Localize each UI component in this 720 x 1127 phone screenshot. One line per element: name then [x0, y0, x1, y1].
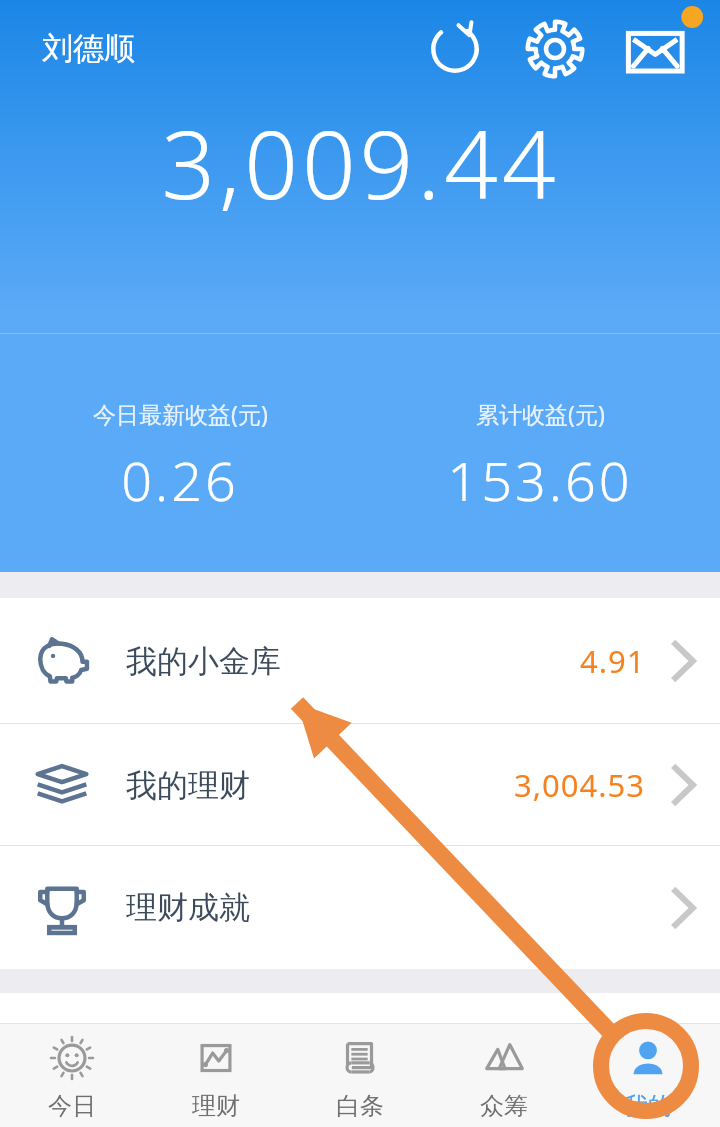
- button[interactable]: 我的理财: [0, 724, 720, 846]
- staticText: 4.91: [580, 640, 646, 682]
- button[interactable]: 理财: [144, 1024, 288, 1127]
- button[interactable]: Messages: [620, 4, 704, 88]
- staticText: 153.60: [447, 443, 633, 517]
- button[interactable]: 白条: [288, 1024, 432, 1127]
- staticText: 今日: [48, 1091, 96, 1121]
- staticText: 今日最新收益(元): [93, 398, 268, 429]
- staticText: 我的小金库: [126, 642, 281, 681]
- staticText: 白条: [336, 1091, 384, 1121]
- button[interactable]: 理财成就: [0, 846, 720, 969]
- button[interactable]: Refresh: [424, 18, 486, 80]
- button[interactable]: 累计收益(元): [360, 340, 720, 517]
- staticText: 0.26: [121, 443, 239, 517]
- button[interactable]: Settings: [524, 18, 586, 80]
- button[interactable]: 我的: [576, 1024, 720, 1127]
- button[interactable]: 我的小金库: [0, 598, 720, 724]
- staticText: 我的: [624, 1091, 672, 1121]
- staticText: 理财: [192, 1091, 240, 1121]
- staticText: 理财成就: [126, 888, 250, 927]
- staticText: 众筹: [480, 1091, 528, 1121]
- staticText: 3,004.53: [514, 764, 646, 806]
- staticText: 累计收益(元): [476, 398, 605, 429]
- staticText: 3,009.44: [161, 99, 560, 227]
- button[interactable]: 今日: [0, 1024, 144, 1127]
- button[interactable]: 今日最新收益(元): [0, 340, 360, 517]
- button[interactable]: 众筹: [432, 1024, 576, 1127]
- staticText: 我的理财: [126, 766, 250, 805]
- button[interactable]: 刘德顺: [40, 29, 137, 68]
